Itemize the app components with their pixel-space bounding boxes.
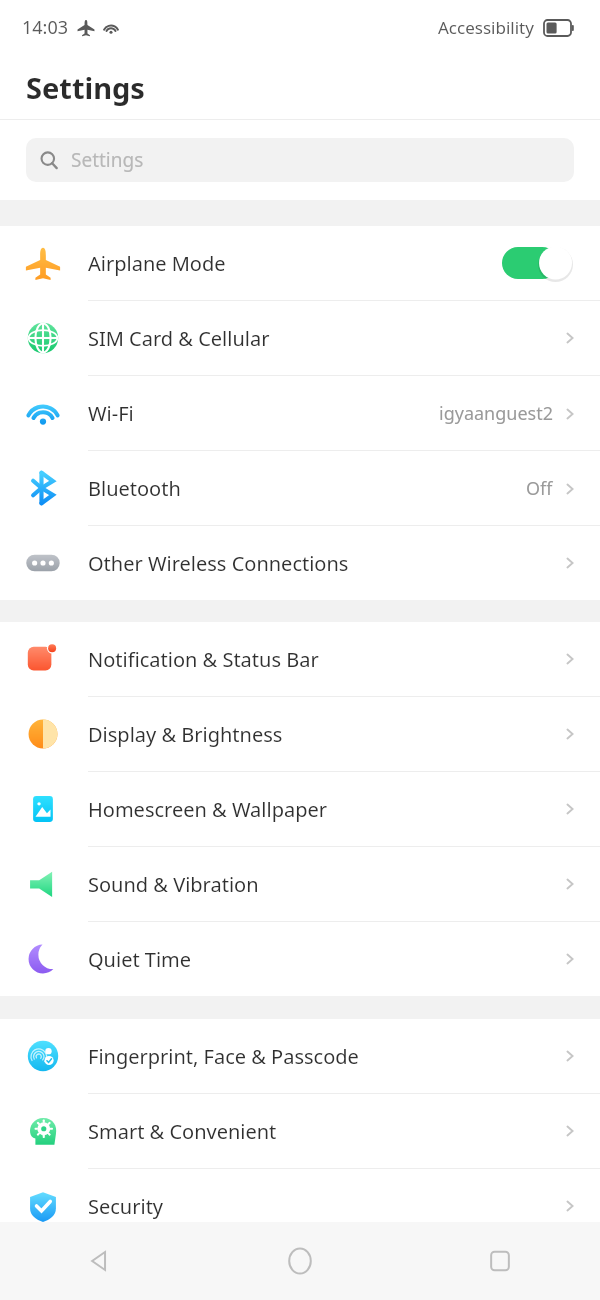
button[interactable]: Notification & Status Bar xyxy=(0,622,600,696)
staticText: Quiet Time xyxy=(88,946,192,973)
button[interactable]: Airplane Mode xyxy=(0,226,600,300)
button[interactable]: Sound & Vibration xyxy=(0,847,600,921)
button[interactable]: Back xyxy=(0,1222,200,1300)
button[interactable]: Wi-Fi xyxy=(0,376,600,450)
button[interactable]: Display & Brightness xyxy=(0,697,600,771)
button[interactable]: SIM Card & Cellular xyxy=(0,301,600,375)
button[interactable]: Quiet Time xyxy=(0,922,600,996)
button[interactable]: Bluetooth xyxy=(0,451,600,525)
staticText: Display & Brightness xyxy=(88,721,283,748)
button[interactable]: Smart & Convenient xyxy=(0,1094,600,1168)
staticText: Wi-Fi xyxy=(88,400,134,427)
button[interactable]: Homescreen & Wallpaper xyxy=(0,772,600,846)
staticText: Other Wireless Connections xyxy=(88,550,349,577)
staticText: 14:03 xyxy=(22,15,69,40)
staticText: Smart & Convenient xyxy=(88,1118,277,1145)
staticText: Settings xyxy=(71,147,144,173)
staticText: SIM Card & Cellular xyxy=(88,325,270,352)
staticText: Airplane Mode xyxy=(88,250,226,277)
staticText: Sound & Vibration xyxy=(88,871,259,898)
staticText: Security xyxy=(88,1193,164,1220)
button[interactable]: Settings xyxy=(26,138,574,182)
button[interactable]: Security xyxy=(0,1169,600,1243)
button[interactable]: Recent apps xyxy=(400,1222,600,1300)
staticText: Fingerprint, Face & Passcode xyxy=(88,1043,359,1070)
staticText: Notification & Status Bar xyxy=(88,646,319,673)
staticText: Bluetooth xyxy=(88,475,181,502)
staticText: igyaanguest2 xyxy=(439,401,553,426)
staticText: Off xyxy=(526,476,553,501)
staticText: Settings xyxy=(26,68,145,107)
staticText: Accessibility xyxy=(438,16,534,39)
staticText: Homescreen & Wallpaper xyxy=(88,796,327,823)
button[interactable]: Home xyxy=(200,1222,400,1300)
button[interactable]: Fingerprint, Face & Passcode xyxy=(0,1019,600,1093)
button[interactable]: Other Wireless Connections xyxy=(0,526,600,600)
